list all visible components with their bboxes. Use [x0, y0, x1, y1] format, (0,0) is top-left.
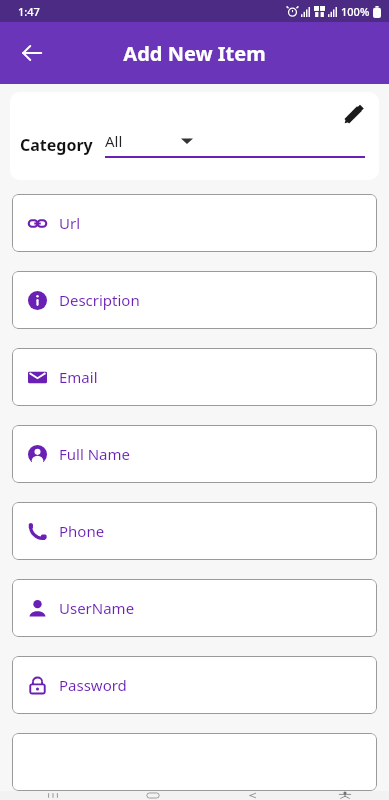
staticText: Full Name [59, 444, 130, 464]
staticText: Category [20, 134, 93, 156]
button[interactable]: Edit [333, 94, 373, 134]
staticText: Password [59, 675, 127, 695]
button[interactable]: Home [131, 791, 175, 800]
staticText: Email [59, 367, 98, 387]
staticText: All [105, 131, 123, 151]
button[interactable]: Password [12, 656, 377, 714]
staticText: 100% [341, 4, 370, 19]
button[interactable]: Url [12, 194, 377, 252]
button[interactable]: All [105, 131, 365, 158]
button[interactable] [12, 733, 377, 791]
button[interactable]: UserName [12, 579, 377, 637]
staticText: Phone [59, 521, 105, 541]
staticText: Url [59, 213, 81, 233]
staticText: 1:47 [18, 4, 40, 19]
button[interactable]: Accessibility [323, 791, 367, 800]
button[interactable]: Recents [31, 791, 75, 800]
staticText: Description [59, 290, 140, 310]
staticText: UserName [59, 598, 135, 618]
button[interactable]: Phone [12, 502, 377, 560]
button[interactable]: Description [12, 271, 377, 329]
button[interactable]: Full Name [12, 425, 377, 483]
staticText: Add New Item [123, 40, 266, 67]
button[interactable]: Back [10, 31, 54, 75]
button[interactable]: Email [12, 348, 377, 406]
button[interactable]: Back [231, 791, 275, 800]
